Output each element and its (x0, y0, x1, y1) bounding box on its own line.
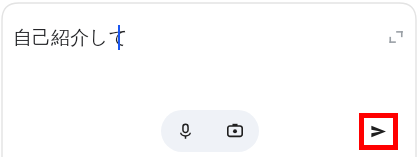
button[interactable]: Camera (210, 110, 259, 152)
button[interactable]: Expand (385, 26, 407, 48)
button[interactable]: Voice input (161, 110, 210, 152)
button[interactable]: Send (359, 113, 398, 150)
button[interactable]: 自己紹介して (13, 24, 253, 52)
staticText: 自己紹介して (13, 26, 128, 50)
